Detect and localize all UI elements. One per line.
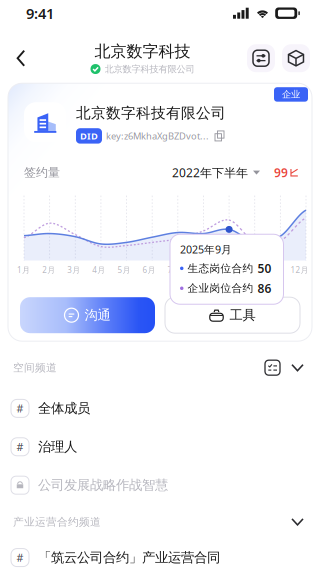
button[interactable]: Back <box>0 39 38 77</box>
staticText: 签约量 <box>24 165 60 180</box>
staticText: 8月 <box>193 265 206 275</box>
staticText: 治理人 <box>38 439 77 455</box>
button[interactable]: 公司发展战略作战智慧 <box>0 466 320 504</box>
staticText: 12月 <box>290 265 308 275</box>
button[interactable]: Settings <box>247 44 275 72</box>
staticText: 企业岗位合约 <box>187 282 253 295</box>
staticText: 空间频道 <box>13 361 57 374</box>
staticText: 5月 <box>117 265 130 275</box>
staticText: 北京数字科技有限公司 <box>104 63 194 75</box>
staticText: 4月 <box>92 265 105 275</box>
staticText: 9月 <box>218 265 231 275</box>
button[interactable]: 工具 <box>165 297 300 333</box>
staticText: 产业运营合约频道 <box>13 515 101 528</box>
staticText: # <box>16 440 23 454</box>
staticText: 企业 <box>282 89 300 100</box>
staticText: 2月 <box>42 265 55 275</box>
staticText: 2025年9月 <box>180 242 232 256</box>
staticText: 7月 <box>167 265 180 275</box>
staticText: 3月 <box>67 265 80 275</box>
staticText: 99 <box>274 165 288 180</box>
staticText: key:z6MkhaXgBZDvot... <box>106 130 209 142</box>
staticText: 全体成员 <box>38 400 90 417</box>
button[interactable]: 沟通 <box>20 297 155 333</box>
staticText: DID <box>80 130 98 142</box>
staticText: 86 <box>257 280 271 296</box>
button[interactable]: 2022年下半年 <box>172 162 260 183</box>
staticText: 10月 <box>240 265 258 275</box>
staticText: 9:41 <box>26 3 54 23</box>
staticText: 6月 <box>142 265 155 275</box>
button[interactable]: Collapse <box>285 512 310 532</box>
staticText: 50 <box>257 260 271 276</box>
staticText: 「筑云公司合约」产业运营合同 <box>38 549 220 566</box>
staticText: 北京数字科技有限公司 <box>76 104 226 122</box>
staticText: # <box>16 550 23 565</box>
staticText: 2022年下半年 <box>172 165 248 180</box>
staticText: 工具 <box>229 307 255 323</box>
button[interactable]: # <box>0 428 320 466</box>
staticText: 生态岗位合约 <box>187 262 253 275</box>
staticText: 沟通 <box>84 307 110 323</box>
staticText: 公司发展战略作战智慧 <box>38 477 168 493</box>
staticText: # <box>16 401 23 415</box>
staticText: 1月 <box>17 265 30 275</box>
button[interactable]: List options <box>260 355 285 380</box>
staticText: 11月 <box>265 265 283 275</box>
staticText: 北京数字科技 <box>94 42 190 61</box>
button[interactable]: Collapse <box>285 358 310 378</box>
button[interactable]: # <box>0 538 320 568</box>
button[interactable]: # <box>0 389 320 428</box>
button[interactable]: Apps <box>282 44 310 72</box>
